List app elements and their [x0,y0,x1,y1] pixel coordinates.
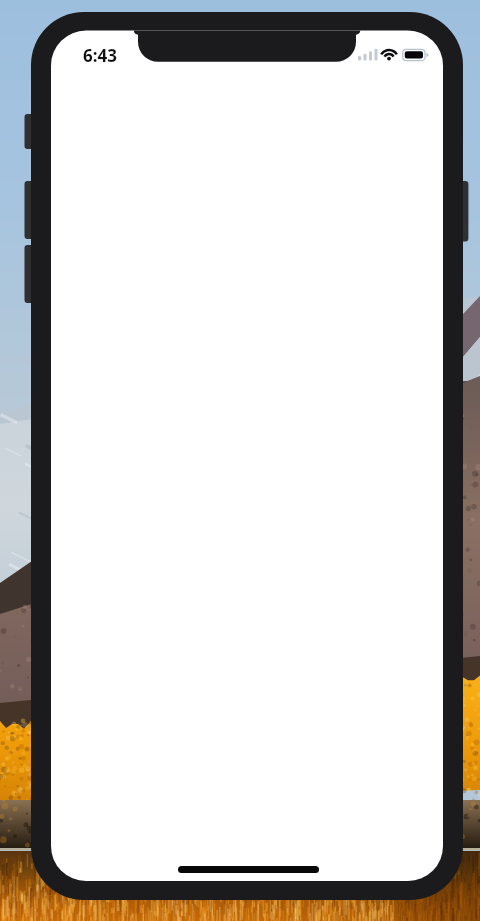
button[interactable]: Volume up [25,181,38,240]
staticText: 6:43 [83,44,117,67]
button[interactable]: Home [176,860,317,876]
button[interactable]: Power [457,181,469,241]
button[interactable]: Volume down [25,246,38,305]
button[interactable]: Silent mode switch [25,117,38,150]
button[interactable] [51,61,443,864]
